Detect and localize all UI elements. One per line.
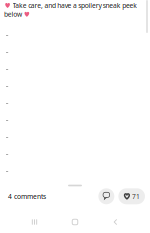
button[interactable]: 71: [118, 188, 145, 204]
button[interactable]: Back: [101, 212, 129, 232]
staticText: 71: [132, 192, 140, 201]
staticText: 4 comments: [8, 192, 46, 201]
button[interactable]: Home: [61, 212, 89, 232]
staticText: Take care, and have a spoilery sneak pee…: [12, 1, 137, 10]
button[interactable]: Comment: [98, 188, 114, 204]
staticText: below: [4, 10, 22, 19]
button[interactable]: Recent apps: [20, 212, 48, 232]
